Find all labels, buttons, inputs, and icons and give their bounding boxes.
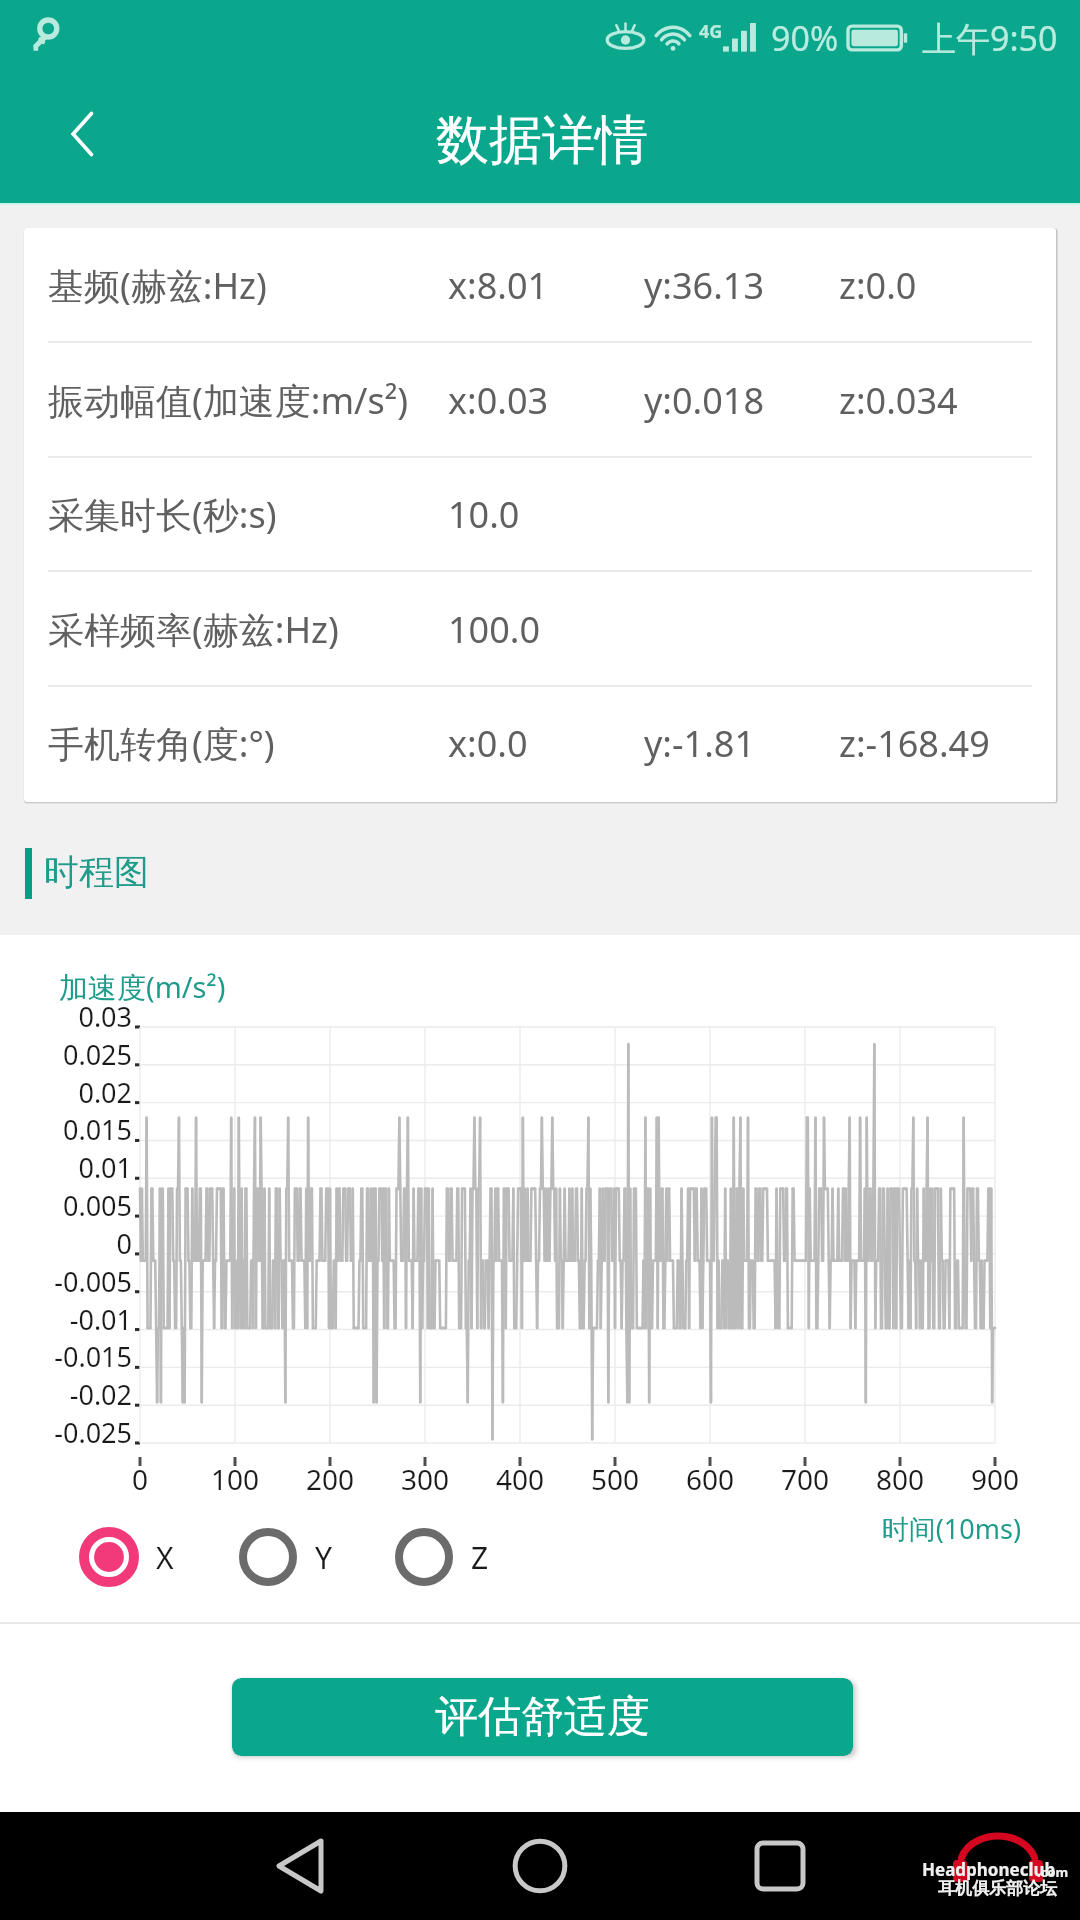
- staticText: X: [156, 1537, 174, 1578]
- staticText: x:0.0: [448, 719, 528, 768]
- staticText: -0.015: [2, 1338, 132, 1375]
- staticText: 0.03: [2, 998, 132, 1035]
- staticText: y:-1.81: [644, 719, 756, 768]
- staticText: -0.005: [2, 1263, 132, 1300]
- staticText: 时间(10ms): [800, 1510, 1021, 1547]
- staticText: 0.02: [2, 1074, 132, 1111]
- staticText: 振动幅值(加速度:m/s²): [48, 376, 409, 425]
- button[interactable]: Home: [486, 1812, 594, 1920]
- staticText: z:0.0: [839, 261, 917, 310]
- staticText: 0: [2, 1225, 132, 1262]
- staticText: 数据详情: [436, 107, 648, 174]
- staticText: 90%: [771, 15, 839, 61]
- staticText: 耳机俱乐部论坛: [938, 1878, 1057, 1899]
- button[interactable]: Recents: [726, 1812, 834, 1920]
- staticText: 4G: [699, 19, 723, 44]
- staticText: 时程图: [44, 850, 149, 894]
- staticText: 0.005: [2, 1187, 132, 1224]
- staticText: x:0.03: [448, 376, 549, 425]
- staticText: 评估舒适度: [435, 1690, 650, 1744]
- staticText: x:8.01: [448, 261, 549, 310]
- button[interactable]: Z: [393, 1524, 489, 1590]
- staticText: 100: [165, 1460, 305, 1498]
- staticText: 0.01: [2, 1149, 132, 1186]
- staticText: 700: [735, 1460, 875, 1498]
- staticText: -0.025: [2, 1414, 132, 1451]
- staticText: 500: [545, 1460, 685, 1498]
- staticText: y:0.018: [644, 376, 765, 425]
- staticText: 300: [355, 1460, 495, 1498]
- staticText: 手机转角(度:°): [48, 719, 275, 768]
- staticText: 400: [450, 1460, 590, 1498]
- staticText: y:36.13: [644, 261, 765, 310]
- staticText: 10.0: [448, 490, 520, 539]
- staticText: Y: [315, 1537, 332, 1578]
- button[interactable]: Back: [30, 79, 140, 189]
- staticText: -0.01: [2, 1301, 132, 1338]
- staticText: 0.025: [2, 1036, 132, 1073]
- staticText: Headphoneclub: [922, 1858, 1056, 1881]
- staticText: 200: [260, 1460, 400, 1498]
- staticText: z:-168.49: [839, 719, 990, 768]
- staticText: z:0.034: [839, 376, 958, 425]
- staticText: 0: [70, 1460, 210, 1498]
- staticText: 基频(赫兹:Hz): [48, 261, 267, 310]
- staticText: 采样频率(赫兹:Hz): [48, 605, 339, 654]
- button[interactable]: X: [78, 1524, 174, 1590]
- staticText: 0.015: [2, 1111, 132, 1148]
- staticText: 800: [830, 1460, 970, 1498]
- staticText: 900: [925, 1460, 1065, 1498]
- staticText: 上午9:50: [922, 15, 1058, 61]
- button[interactable]: 评估舒适度: [232, 1678, 853, 1756]
- staticText: -0.02: [2, 1376, 132, 1413]
- staticText: Z: [471, 1537, 489, 1578]
- staticText: .com: [1037, 1863, 1069, 1881]
- staticText: 采集时长(秒:s): [48, 490, 277, 539]
- staticText: 600: [640, 1460, 780, 1498]
- button[interactable]: Back: [246, 1812, 354, 1920]
- button[interactable]: Y: [237, 1524, 332, 1590]
- staticText: 100.0: [448, 605, 541, 654]
- staticText: 加速度(m/s²): [59, 967, 226, 1007]
